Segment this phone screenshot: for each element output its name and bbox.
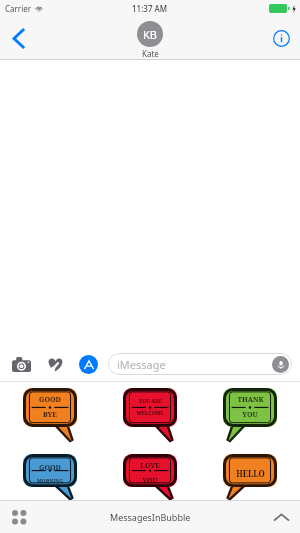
staticText: YOU ARE (139, 398, 162, 405)
staticText: 11:37 AM (132, 3, 168, 14)
button[interactable]: YOU ARE (100, 382, 200, 448)
staticText: Kate (142, 48, 159, 59)
button[interactable]: GOOD (0, 382, 100, 448)
staticText: LOVE (140, 461, 160, 471)
button[interactable]: HELLO (200, 448, 300, 500)
staticText: HELLO (236, 468, 265, 479)
button[interactable]: Expand (266, 502, 296, 532)
staticText: MORNING (37, 478, 63, 485)
staticText: YOU (142, 476, 158, 486)
button[interactable]: Digital Touch (42, 351, 68, 377)
button[interactable]: LOVE (100, 448, 200, 500)
button[interactable]: KB (137, 21, 163, 59)
staticText: KB (143, 27, 157, 42)
button[interactable]: App Store (75, 351, 101, 377)
staticText: iMessage (117, 357, 166, 372)
staticText: GOOD (39, 463, 61, 473)
staticText: Carrier (5, 3, 32, 14)
button[interactable]: THANK (200, 382, 300, 448)
staticText: WELCOME (136, 410, 164, 417)
button[interactable]: Camera (8, 351, 34, 377)
button[interactable]: GOOD (0, 448, 100, 500)
staticText: GOOD (39, 395, 61, 405)
button[interactable]: Back (2, 21, 36, 55)
button[interactable]: iMessage (108, 353, 292, 375)
button[interactable]: Dictate (272, 356, 289, 373)
staticText: MessagesInBubble (110, 511, 191, 523)
staticText: BYE (43, 410, 57, 420)
button[interactable]: Details (266, 23, 296, 53)
staticText: YOU (242, 410, 258, 420)
staticText: THANK (237, 395, 264, 405)
button[interactable]: All apps (4, 502, 34, 532)
